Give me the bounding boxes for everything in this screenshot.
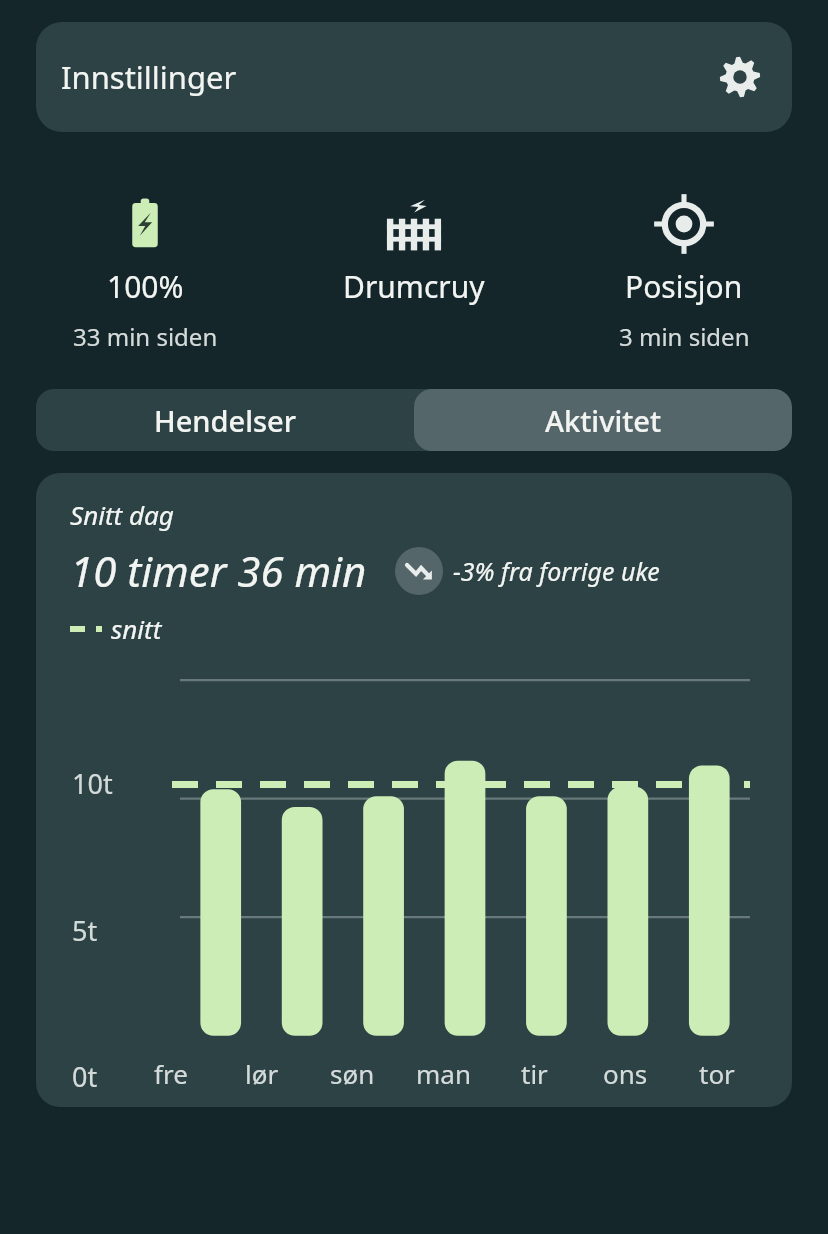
button[interactable]: Battery status (20, 188, 270, 353)
staticText: tir (521, 1056, 548, 1091)
staticText: man (416, 1056, 471, 1091)
staticText: søn (330, 1056, 375, 1091)
staticText: 33 min siden (73, 320, 218, 353)
staticText: fre (154, 1056, 188, 1091)
staticText: -3% fra forrige uke (453, 554, 660, 588)
staticText: Drumcruy (343, 266, 485, 307)
staticText: 10t (72, 765, 113, 802)
staticText: 5t (72, 912, 98, 949)
staticText: Posisjon (625, 266, 743, 307)
button[interactable]: Hendelser (36, 389, 414, 451)
staticText: lør (245, 1056, 279, 1091)
button[interactable]: Innstillinger (36, 22, 792, 132)
button[interactable]: Fence (289, 188, 539, 307)
button[interactable]: Aktivitet (414, 389, 792, 451)
staticText: Aktivitet (545, 401, 662, 440)
staticText: 10 timer 36 min (70, 542, 367, 599)
other: Trend down (395, 547, 443, 595)
staticText: Hendelser (154, 401, 296, 440)
staticText: Snitt dag (70, 497, 174, 532)
button[interactable]: Settings (713, 50, 767, 104)
button[interactable]: Snitt dag (36, 473, 792, 1107)
staticText: snitt (111, 611, 162, 646)
button[interactable]: Location (559, 188, 809, 353)
staticText: 3 min siden (619, 320, 750, 353)
staticText: ons (603, 1056, 648, 1091)
staticText: 0t (72, 1058, 98, 1095)
staticText: 100% (107, 266, 184, 307)
staticText: tor (699, 1056, 735, 1091)
staticText: Innstillinger (61, 56, 237, 98)
